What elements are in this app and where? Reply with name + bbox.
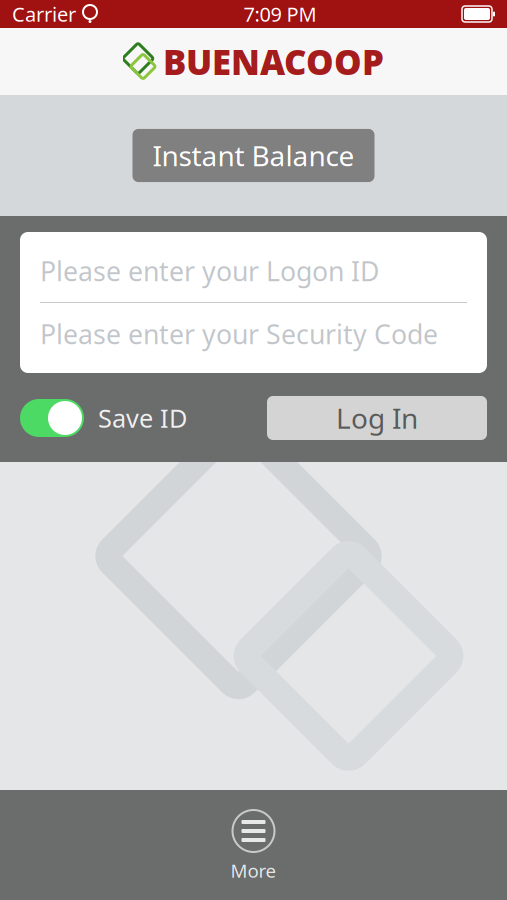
button[interactable]: Please enter your Logon ID [20, 240, 487, 302]
staticText: 7:09 PM [243, 1, 316, 27]
button[interactable]: Save ID [20, 399, 187, 437]
button[interactable]: Instant Balance [132, 129, 374, 182]
button[interactable]: Log In [267, 396, 487, 440]
staticText: BUENACOOP [163, 38, 384, 84]
button[interactable]: Please enter your Security Code [20, 303, 487, 365]
staticText: Please enter your Logon ID [40, 253, 379, 289]
staticText: Carrier [12, 1, 76, 27]
staticText: Instant Balance [152, 137, 354, 174]
staticText: Please enter your Security Code [40, 316, 438, 352]
staticText: Save ID [98, 401, 187, 435]
staticText: More [230, 858, 276, 883]
button[interactable]: More [230, 810, 276, 883]
staticText: Log In [336, 399, 418, 437]
